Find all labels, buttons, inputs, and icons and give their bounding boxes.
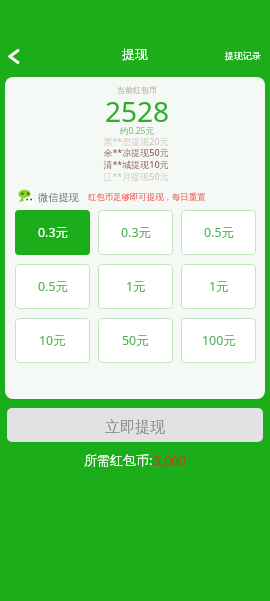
staticText: 10元 bbox=[39, 332, 66, 349]
button[interactable]: 0.3元 bbox=[15, 210, 90, 255]
button[interactable]: 10元 bbox=[15, 318, 90, 363]
staticText: 2528 bbox=[7, 92, 265, 130]
staticText: 清**城提现10元 bbox=[6, 158, 265, 170]
button[interactable]: 1元 bbox=[98, 264, 173, 309]
staticText: 0.5元 bbox=[204, 224, 234, 241]
staticText: 微信提现 bbox=[38, 191, 79, 204]
staticText: 100元 bbox=[202, 332, 236, 349]
button[interactable]: 1元 bbox=[181, 264, 256, 309]
staticText: 0.5元 bbox=[38, 278, 68, 295]
staticText: 提现 bbox=[0, 46, 270, 62]
staticText: 黑**思提现20元 bbox=[6, 135, 265, 147]
staticText: 1元 bbox=[209, 278, 229, 295]
staticText: 50元 bbox=[122, 332, 149, 349]
staticText: 1元 bbox=[126, 278, 146, 295]
button[interactable]: 提现记录 bbox=[216, 45, 270, 66]
staticText: 提现记录 bbox=[225, 50, 261, 61]
staticText: 0.3元 bbox=[121, 224, 151, 241]
staticText: 约0.25元 bbox=[7, 125, 265, 137]
staticText: 红包币足够即可提现，每日重置 bbox=[88, 192, 206, 203]
staticText: 江**月提现50元 bbox=[6, 170, 265, 182]
button[interactable]: 0.5元 bbox=[15, 264, 90, 309]
button[interactable]: 50元 bbox=[98, 318, 173, 363]
button[interactable]: Back bbox=[0, 38, 31, 74]
button[interactable]: 立即提现 bbox=[7, 408, 263, 442]
staticText: 所需红包币: bbox=[84, 451, 153, 469]
staticText: 余**凉提现50元 bbox=[6, 146, 265, 158]
button[interactable]: 100元 bbox=[181, 318, 256, 363]
staticText: 立即提现 bbox=[105, 418, 165, 437]
staticText: 当前红包币 bbox=[7, 85, 265, 95]
button[interactable]: 0.3元 bbox=[98, 210, 173, 255]
button[interactable]: 0.5元 bbox=[181, 210, 256, 255]
staticText: 3,000 bbox=[153, 451, 187, 469]
staticText: 0.3元 bbox=[38, 224, 68, 241]
